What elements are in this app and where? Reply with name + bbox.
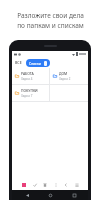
button[interactable]: РАБОТА (12, 68, 49, 84)
staticText: Разложите свои дела (17, 11, 84, 20)
staticText: РАБОТА (21, 71, 34, 76)
button[interactable]: Завершить (30, 180, 39, 189)
staticText: Задач: 7 (21, 94, 33, 98)
button[interactable]: Главный экран (41, 190, 59, 200)
staticText: Задач: 2 (59, 77, 71, 81)
button[interactable]: ВСЕ (14, 59, 23, 66)
button[interactable]: Назад (18, 190, 36, 200)
staticText: ДОМ (59, 71, 68, 76)
button[interactable]: Удалить (40, 180, 49, 189)
button[interactable]: Ещё (51, 180, 60, 189)
staticText: по папкам и спискам (17, 21, 84, 30)
button[interactable]: ДОМ (50, 68, 88, 84)
button[interactable]: Списки (26, 59, 50, 67)
button[interactable]: Отметить (19, 180, 28, 189)
button[interactable]: Назад (61, 180, 70, 189)
staticText: ПОКУПКИ (21, 88, 38, 93)
button[interactable]: ПОКУПКИ (12, 85, 49, 101)
staticText: Списки (29, 61, 44, 66)
button[interactable]: Недавние (65, 190, 83, 200)
staticText: ВСЕ (15, 60, 22, 65)
staticText: Задач: 4 (21, 77, 33, 81)
button[interactable]: Меню (72, 180, 81, 189)
